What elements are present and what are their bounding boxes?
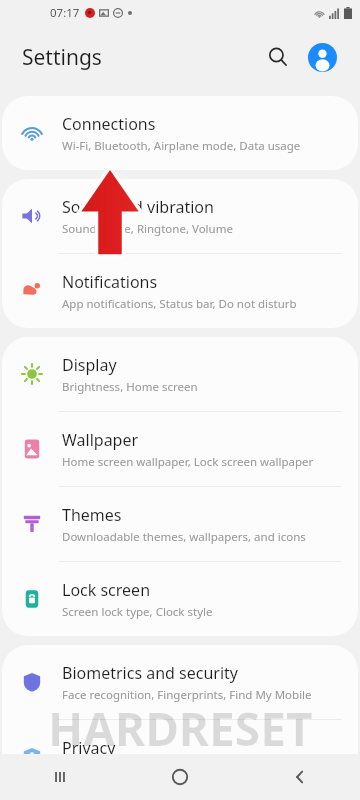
staticText: Face recognition, Fingerprints, Find My … bbox=[62, 687, 312, 703]
staticText: Notifications bbox=[62, 271, 158, 293]
button[interactable]: Connections bbox=[2, 96, 358, 170]
button[interactable]: Search bbox=[258, 37, 298, 77]
staticText: Connections bbox=[62, 113, 156, 135]
staticText: Home screen wallpaper, Lock screen wallp… bbox=[62, 454, 314, 470]
staticText: 07:17 bbox=[50, 5, 80, 21]
button[interactable]: Themes bbox=[2, 487, 358, 561]
button[interactable]: Home bbox=[120, 754, 240, 800]
button[interactable]: Lock screen bbox=[2, 562, 358, 636]
button[interactable]: Display bbox=[2, 337, 358, 411]
button[interactable]: Back bbox=[240, 754, 360, 800]
staticText: Screen lock type, Clock style bbox=[62, 604, 213, 620]
button[interactable]: Biometrics and security bbox=[2, 645, 358, 719]
button[interactable]: Privacy bbox=[2, 720, 358, 794]
staticText: Permission manager bbox=[62, 762, 175, 778]
staticText: HARDRESET bbox=[48, 697, 313, 760]
staticText: Downloadable themes, wallpapers, and ico… bbox=[62, 529, 306, 545]
button[interactable]: Sound and vibration bbox=[2, 179, 358, 253]
button[interactable]: Wallpaper bbox=[2, 412, 358, 486]
staticText: Sound mode, Ringtone, Volume bbox=[62, 221, 233, 237]
staticText: Biometrics and security bbox=[62, 662, 239, 684]
staticText: Wallpaper bbox=[62, 429, 139, 451]
button[interactable]: Samsung account bbox=[302, 37, 342, 77]
staticText: Sound and vibration bbox=[62, 196, 214, 218]
staticText: Privacy bbox=[62, 737, 116, 759]
button[interactable]: Recents bbox=[0, 754, 120, 800]
button[interactable]: Notifications bbox=[2, 254, 358, 328]
staticText: Wi-Fi, Bluetooth, Airplane mode, Data us… bbox=[62, 138, 301, 154]
staticText: Settings bbox=[22, 43, 102, 72]
staticText: Lock screen bbox=[62, 579, 151, 601]
staticText: Themes bbox=[62, 504, 122, 526]
staticText: Brightness, Home screen bbox=[62, 379, 198, 395]
staticText: App notifications, Status bar, Do not di… bbox=[62, 296, 297, 312]
staticText: Display bbox=[62, 354, 117, 376]
